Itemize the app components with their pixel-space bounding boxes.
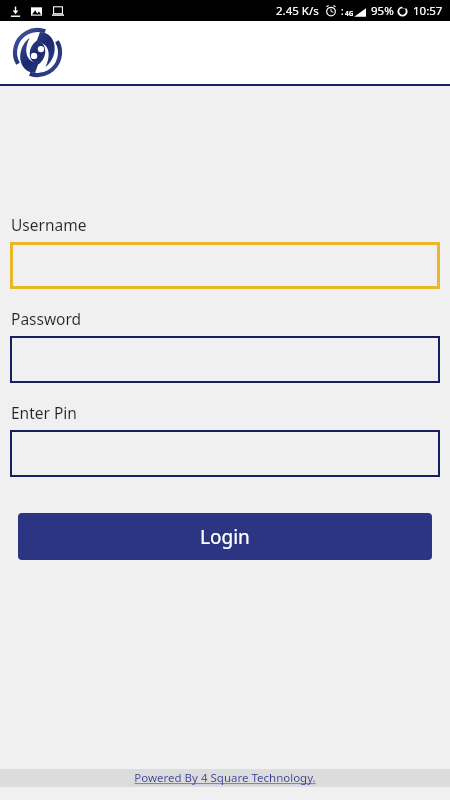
staticText: 4G	[345, 9, 354, 18]
button[interactable]: Powered By 4 Square Technology.	[0, 769, 450, 787]
staticText: Password	[11, 308, 82, 329]
staticText: 95%	[371, 3, 394, 19]
staticText: :	[341, 4, 344, 18]
staticText: Powered By 4 Square Technology.	[134, 770, 316, 786]
button[interactable]: App logo	[13, 28, 62, 77]
button[interactable]: Login	[18, 513, 432, 560]
button[interactable]: Pin input	[10, 430, 440, 477]
staticText: Enter Pin	[11, 402, 77, 423]
staticText: 10:57	[413, 3, 443, 19]
staticText: Login	[200, 524, 250, 550]
staticText: 2.45 K/s	[276, 3, 319, 19]
staticText: Username	[11, 214, 87, 235]
button[interactable]: Password input	[10, 336, 440, 383]
button[interactable]: Username input	[10, 242, 440, 289]
